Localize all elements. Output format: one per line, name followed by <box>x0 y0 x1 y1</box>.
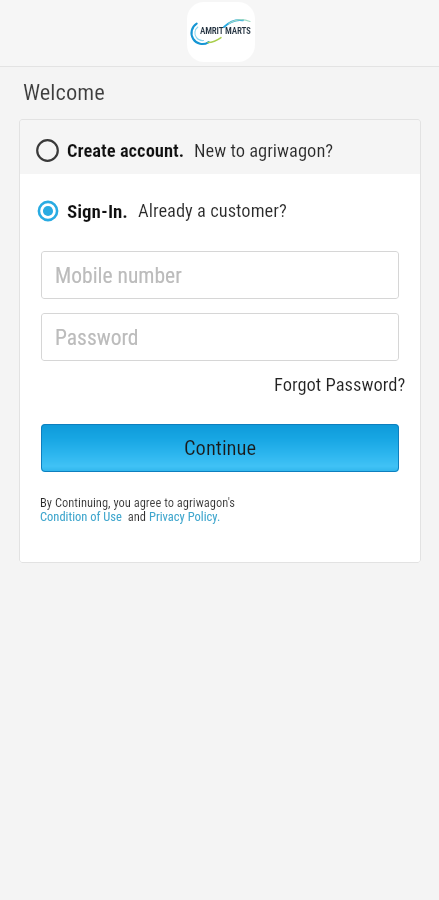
button[interactable]: Amrit Marts logo <box>187 2 255 62</box>
staticText: By Continuing, you agree to agriwagon's <box>40 495 236 510</box>
staticText: New to agriwagon? <box>194 140 334 162</box>
other: Create account option <box>36 139 59 162</box>
button[interactable]: Mobile number <box>41 251 399 299</box>
button[interactable]: Continue <box>41 424 399 472</box>
staticText: AMRIT MARTS <box>200 26 251 37</box>
staticText: Mobile number <box>55 263 182 288</box>
other: Sign-In option selected <box>37 200 59 222</box>
staticText: Password <box>55 325 139 350</box>
button[interactable]: Password <box>41 313 399 361</box>
staticText: Sign-In. <box>67 200 128 222</box>
button[interactable]: Privacy Policy. <box>149 509 221 524</box>
button[interactable]: Create account option <box>19 119 421 174</box>
button[interactable]: Sign-In option selected <box>19 199 421 223</box>
staticText: Continue <box>184 436 257 460</box>
staticText: Already a customer? <box>138 200 287 222</box>
staticText: and <box>122 509 149 524</box>
staticText: Welcome <box>23 79 105 105</box>
button[interactable]: Condition of Use <box>40 509 122 524</box>
staticText: Create account. <box>67 140 185 162</box>
button[interactable]: Forgot Password? <box>272 372 408 398</box>
